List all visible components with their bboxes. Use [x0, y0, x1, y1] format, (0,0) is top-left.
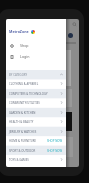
- staticText: MetroZone: [9, 29, 29, 34]
- button[interactable]: CLOTHING & APPAREL: [6, 79, 66, 88]
- staticText: CLOTHING & APPAREL: [9, 82, 39, 86]
- button[interactable]: COMPUTERS & TECHNOLOGY: [6, 89, 66, 98]
- button[interactable]: HOME & FURNITURE: [6, 136, 66, 145]
- staticText: SHOP NOW: [47, 149, 63, 153]
- staticText: COMPUTERS & TECHNOLOGY: [9, 92, 48, 96]
- staticText: SHOP NOW: [47, 139, 63, 143]
- staticText: Login: [20, 54, 30, 59]
- button[interactable]: JEWELRY & WATCHES: [6, 127, 66, 136]
- button[interactable]: Shop: [6, 40, 66, 51]
- button[interactable]: MetroZone: [9, 29, 35, 34]
- other: Search: [72, 22, 77, 27]
- staticText: HOME & FURNITURE: [9, 139, 37, 143]
- button[interactable]: HEALTH & BEAUTY: [6, 117, 66, 126]
- button[interactable]: BY CATEGORY: [6, 70, 66, 79]
- staticText: HEALTH & BEAUTY: [9, 120, 34, 124]
- staticText: GARDEN & KITCHEN: [9, 111, 36, 115]
- staticText: BY CATEGORY: [9, 73, 28, 77]
- staticText: JEWELRY & WATCHES: [9, 130, 37, 134]
- button[interactable]: COMMUNITY/UTILITIES: [6, 98, 66, 107]
- staticText: COMMUNITY/UTILITIES: [9, 101, 40, 105]
- button[interactable]: GARDEN & KITCHEN: [6, 108, 66, 117]
- staticText: SPORT & OUTDOOR: [9, 149, 36, 153]
- button[interactable]: SPORT & OUTDOOR: [6, 146, 66, 155]
- button[interactable]: Login: [6, 51, 66, 62]
- staticText: TOYS & GAMES: [9, 158, 29, 162]
- staticText: Shop: [20, 43, 29, 48]
- button[interactable]: TOYS & GAMES: [6, 155, 66, 164]
